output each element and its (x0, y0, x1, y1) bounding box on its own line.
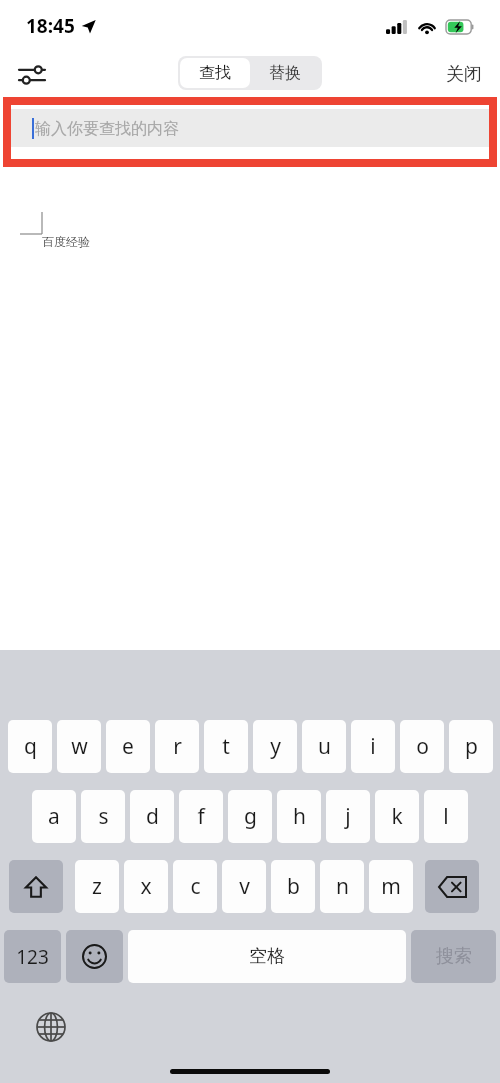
staticText: 替换 (269, 63, 301, 83)
staticText: q (24, 732, 37, 761)
button[interactable]: Emoji (66, 930, 123, 983)
button[interactable]: f (179, 790, 223, 843)
button[interactable]: x (124, 860, 168, 913)
button[interactable]: 替换 (250, 58, 320, 88)
staticText: c (190, 872, 201, 901)
button[interactable]: 输入你要查找的内容 (11, 109, 489, 147)
button[interactable]: m (369, 860, 413, 913)
button[interactable]: u (302, 720, 346, 773)
button[interactable]: c (173, 860, 217, 913)
staticText: h (293, 802, 306, 831)
button[interactable]: l (424, 790, 468, 843)
button[interactable]: j (326, 790, 370, 843)
staticText: 输入你要查找的内容 (35, 119, 179, 139)
button[interactable]: q (8, 720, 52, 773)
staticText: b (287, 872, 300, 901)
button[interactable]: 查找 (180, 58, 250, 88)
button[interactable]: y (253, 720, 297, 773)
button[interactable]: i (351, 720, 395, 773)
staticText: z (92, 872, 102, 901)
staticText: r (173, 732, 182, 761)
button[interactable]: s (81, 790, 125, 843)
staticText: 查找 (199, 63, 231, 83)
button[interactable]: r (155, 720, 199, 773)
staticText: 搜索 (436, 945, 472, 968)
button[interactable]: o (400, 720, 444, 773)
button[interactable]: z (75, 860, 119, 913)
staticText: e (122, 732, 134, 761)
staticText: j (345, 802, 351, 831)
button[interactable]: k (375, 790, 419, 843)
staticText: v (239, 872, 250, 901)
button[interactable]: g (228, 790, 272, 843)
button[interactable]: h (277, 790, 321, 843)
staticText: w (71, 732, 88, 761)
button[interactable]: b (271, 860, 315, 913)
button[interactable]: v (222, 860, 266, 913)
staticText: m (381, 872, 401, 901)
staticText: 123 (16, 944, 49, 970)
staticText: g (244, 802, 257, 831)
staticText: x (140, 872, 152, 901)
staticText: i (370, 732, 376, 761)
staticText: 空格 (249, 945, 285, 968)
staticText: 百度经验 (42, 234, 90, 249)
staticText: s (98, 802, 109, 831)
button[interactable]: a (32, 790, 76, 843)
staticText: u (318, 732, 331, 761)
staticText: f (197, 802, 205, 831)
staticText: 18:45 (26, 13, 75, 39)
button[interactable]: d (130, 790, 174, 843)
staticText: p (465, 732, 478, 761)
staticText: n (336, 872, 349, 901)
staticText: l (443, 802, 449, 831)
button[interactable]: 123 (4, 930, 61, 983)
staticText: a (48, 802, 60, 831)
button[interactable]: 空格 (128, 930, 406, 983)
button[interactable]: Shift (9, 860, 63, 913)
button[interactable]: 关闭 (438, 59, 490, 90)
button[interactable]: 搜索 (411, 930, 496, 983)
staticText: t (222, 732, 230, 761)
button[interactable]: p (449, 720, 493, 773)
staticText: k (391, 802, 403, 831)
staticText: y (270, 732, 281, 761)
staticText: d (146, 802, 159, 831)
button[interactable]: Search options (14, 57, 50, 93)
button[interactable]: t (204, 720, 248, 773)
button[interactable]: Backspace (425, 860, 479, 913)
button[interactable]: w (57, 720, 101, 773)
button[interactable]: Change keyboard language (30, 1006, 72, 1048)
button[interactable]: e (106, 720, 150, 773)
staticText: o (416, 732, 429, 761)
staticText: 关闭 (446, 63, 482, 86)
button[interactable]: n (320, 860, 364, 913)
